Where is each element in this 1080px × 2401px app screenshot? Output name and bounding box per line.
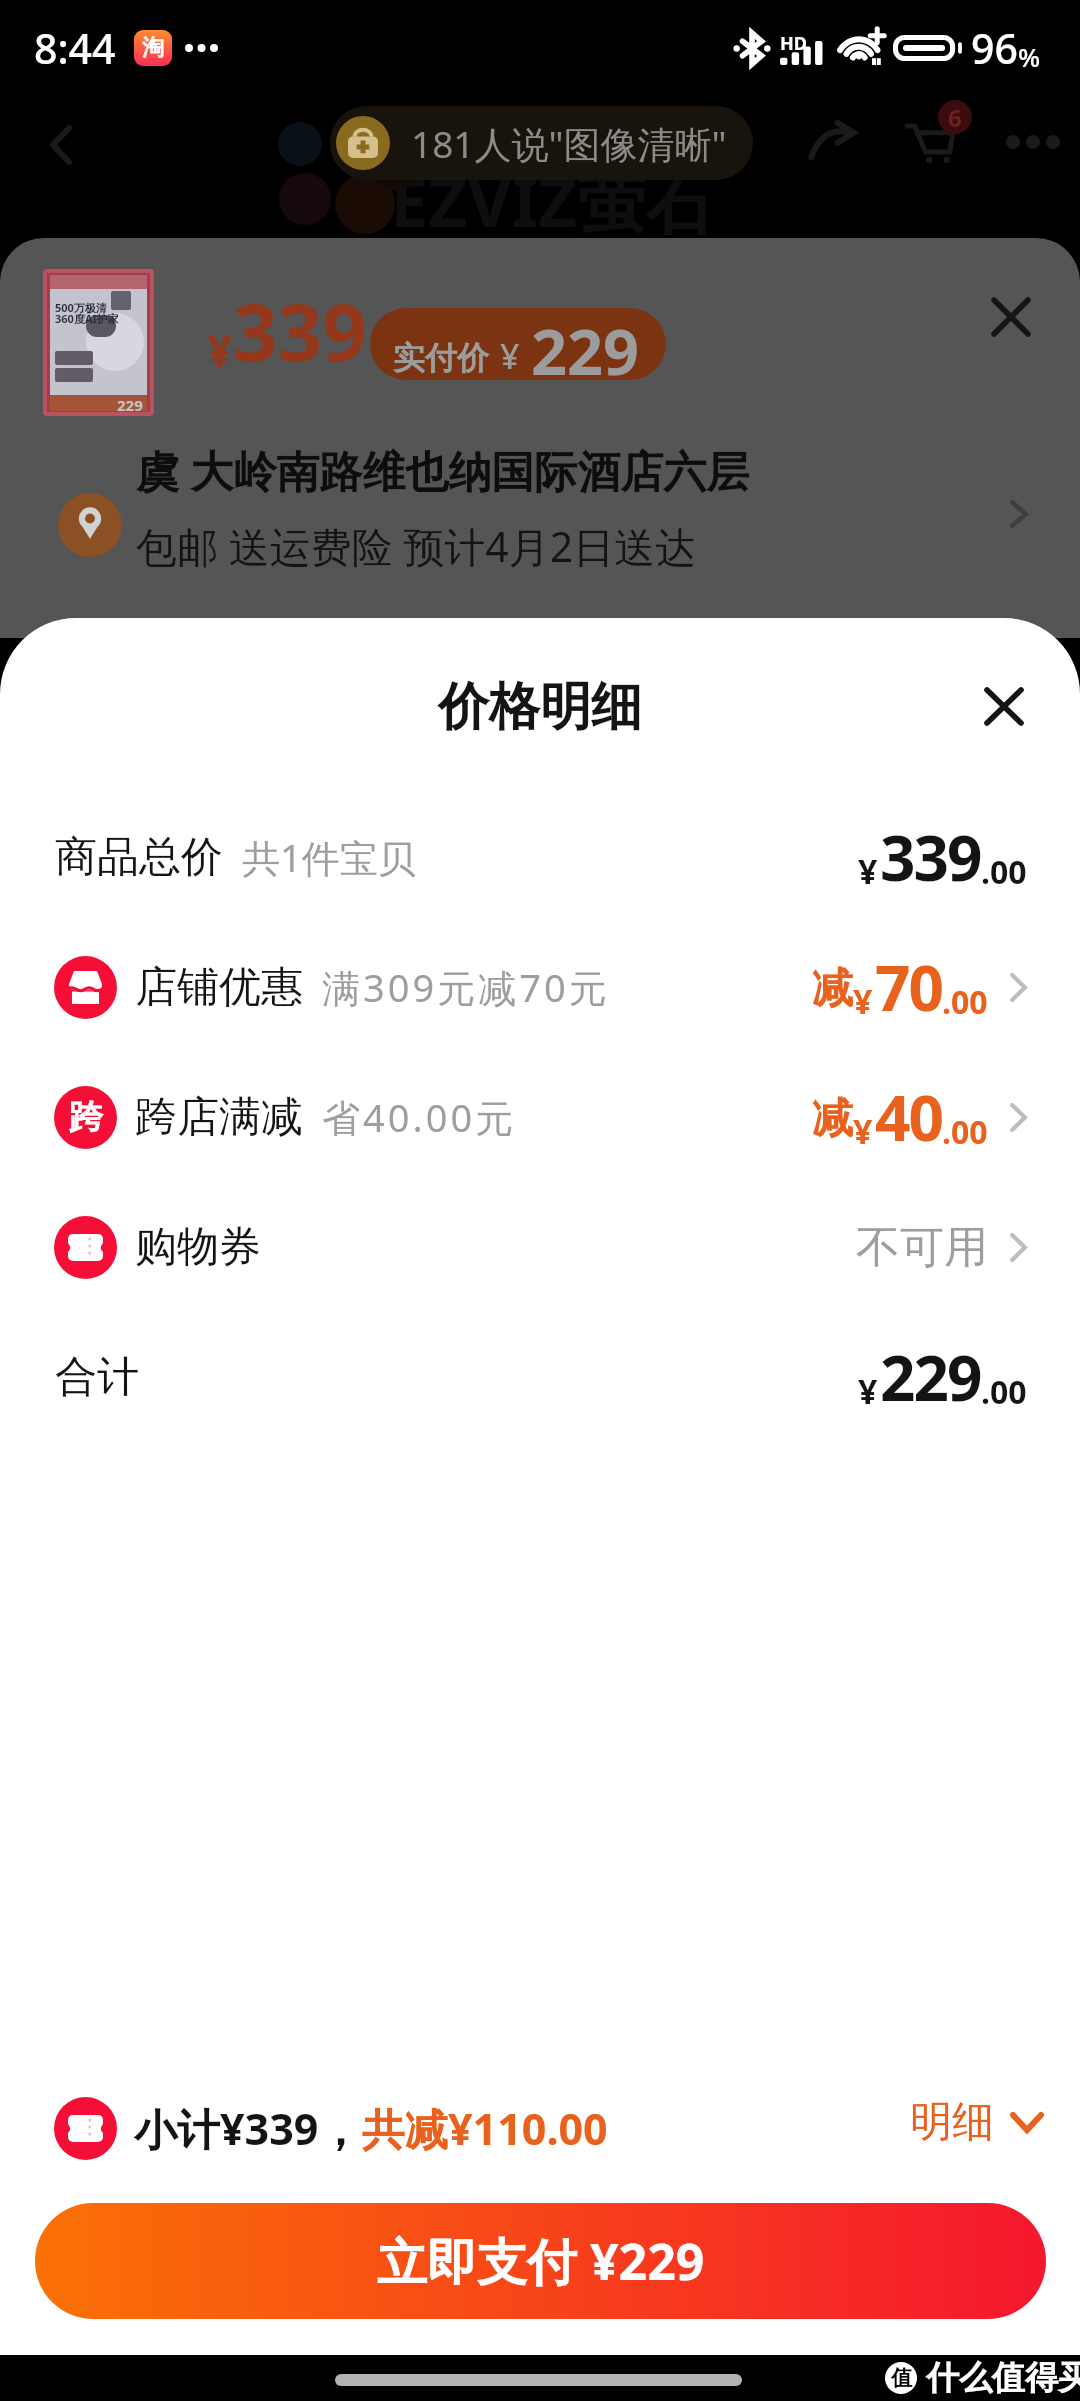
staticText: 满309元减70元 [322, 961, 610, 1013]
staticText: 共1件宝贝 [242, 831, 416, 883]
staticText: ¥ [858, 1368, 878, 1414]
staticText: 包邮 送运费险 预计4月2日送达 [136, 518, 697, 574]
button[interactable]: 关闭 [968, 274, 1054, 360]
staticText: 淘 [142, 34, 164, 62]
staticText: ¥ [853, 1108, 873, 1154]
staticText: .00 [942, 980, 988, 1024]
staticText: 339 [880, 815, 981, 899]
staticText: 共减¥110.00 [362, 2099, 608, 2158]
staticText: 价格明细 [438, 675, 642, 739]
staticText: .00 [981, 1370, 1027, 1414]
staticText: 商品总价 [55, 831, 223, 884]
staticText: 实付价 [393, 338, 489, 378]
staticText: 跨 [69, 1096, 103, 1139]
staticText: 购物券 [135, 1221, 261, 1274]
staticText: 8:44 [34, 20, 116, 76]
button[interactable]: 店铺优惠 [0, 922, 1080, 1052]
staticText: 不可用 [856, 1220, 988, 1275]
button[interactable]: 181人说"图像清晰" [336, 106, 727, 180]
button[interactable]: 购物券 [0, 1182, 1080, 1312]
staticText: 值 [891, 2365, 912, 2391]
staticText: 虞 大岭南路维也纳国际酒店六层 [136, 441, 750, 500]
staticText: HD [780, 31, 807, 56]
staticText: 339 [233, 278, 367, 384]
staticText: % [1018, 39, 1041, 74]
staticText: 减 [812, 963, 853, 1015]
staticText: .00 [981, 850, 1027, 894]
staticText: 70 [875, 945, 942, 1029]
button[interactable]: 明细 [902, 2088, 1052, 2157]
staticText: 跨店满减 [135, 1091, 303, 1144]
staticText: 40 [875, 1075, 942, 1159]
button[interactable]: 立即支付 ¥229 [35, 2203, 1046, 2319]
staticText: 6 [948, 101, 962, 134]
button[interactable]: 跨 [0, 1052, 1080, 1182]
staticText: 什么值得买 [926, 2357, 1080, 2399]
button[interactable]: 返回 [20, 104, 102, 186]
staticText: 360度AI护家 [55, 311, 119, 326]
staticText: 500万极清 [55, 300, 107, 315]
staticText: 229 [880, 1335, 981, 1419]
staticText: 181人说"图像清晰" [411, 118, 727, 169]
staticText: 229 [531, 308, 640, 380]
staticText: 减 [812, 1093, 853, 1145]
staticText: 店铺优惠 [135, 961, 303, 1014]
staticText: 96 [971, 20, 1018, 76]
button[interactable]: 购物车 [890, 102, 970, 182]
staticText: 明细 [910, 2096, 994, 2149]
button[interactable]: 关闭 [961, 663, 1047, 749]
staticText: ¥ [207, 320, 233, 380]
staticText: ¥ [853, 978, 873, 1024]
staticText: 229 [117, 395, 143, 411]
staticText: 小计¥339， [134, 2099, 362, 2158]
staticText: 省40.00元 [322, 1091, 517, 1143]
staticText: EZVIZ萤石 [390, 154, 714, 247]
staticText: .00 [942, 1110, 988, 1154]
button[interactable]: 分享 [792, 102, 872, 182]
staticText: ¥ [500, 333, 520, 379]
button[interactable]: 更多 [992, 102, 1072, 182]
staticText: 立即支付 ¥229 [377, 2227, 705, 2295]
staticText: 合计 [55, 1351, 139, 1404]
staticText: ¥ [858, 848, 878, 894]
